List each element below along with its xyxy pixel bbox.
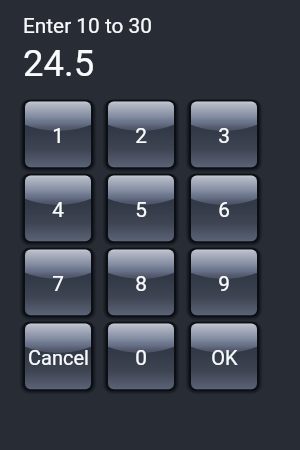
- button[interactable]: 9: [189, 248, 259, 317]
- staticText: 2: [135, 124, 147, 148]
- staticText: 6: [218, 198, 230, 222]
- button[interactable]: 1: [23, 100, 93, 169]
- staticText: 5: [135, 198, 147, 222]
- button[interactable]: 5: [106, 174, 176, 243]
- staticText: 8: [135, 272, 147, 296]
- button[interactable]: 6: [189, 174, 259, 243]
- button[interactable]: 3: [189, 100, 259, 169]
- button[interactable]: 2: [106, 100, 176, 169]
- button[interactable]: 4: [23, 174, 93, 243]
- staticText: OK: [211, 346, 238, 369]
- staticText: Cancel: [28, 346, 89, 369]
- button[interactable]: Cancel: [23, 322, 93, 391]
- button[interactable]: OK: [189, 322, 259, 391]
- staticText: 1: [52, 124, 64, 148]
- staticText: 24.5: [23, 42, 95, 85]
- staticText: 3: [218, 124, 230, 148]
- button[interactable]: 0: [106, 322, 176, 391]
- button[interactable]: 7: [23, 248, 93, 317]
- staticText: 7: [52, 272, 64, 296]
- staticText: 9: [218, 272, 230, 296]
- staticText: 4: [52, 198, 64, 222]
- staticText: 0: [135, 346, 147, 370]
- staticText: Enter 10 to 30: [23, 14, 152, 38]
- button[interactable]: 8: [106, 248, 176, 317]
